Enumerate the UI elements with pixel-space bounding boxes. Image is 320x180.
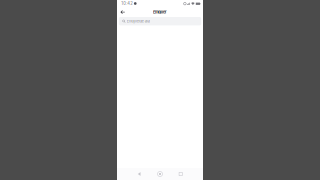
staticText: 10:42 xyxy=(121,1,133,6)
button[interactable]: Home xyxy=(157,171,163,177)
button[interactable]: Back xyxy=(137,171,142,176)
button[interactable]: Recent apps xyxy=(178,171,183,176)
staticText: Emojilerde ara xyxy=(127,19,150,23)
staticText: Emojiler xyxy=(153,10,167,14)
button[interactable]: Emojilerde ara xyxy=(119,17,201,25)
button[interactable]: Back xyxy=(120,7,127,17)
